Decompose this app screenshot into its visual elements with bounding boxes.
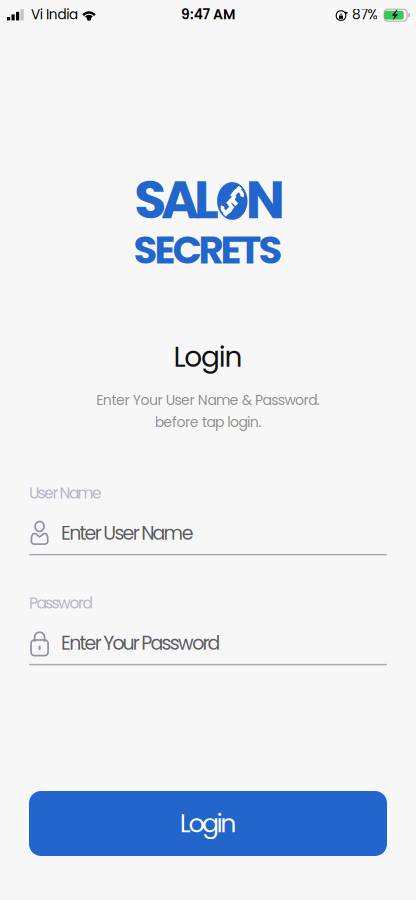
staticText: N xyxy=(246,164,285,236)
staticText: User Name xyxy=(29,482,102,504)
staticText: Enter User Name xyxy=(61,520,194,546)
staticText: 9:47 AM xyxy=(181,5,235,24)
staticText: Login xyxy=(180,806,236,841)
staticText: 87% xyxy=(352,5,377,24)
staticText: Vi India xyxy=(31,5,78,24)
button[interactable]: Login xyxy=(29,791,387,856)
button[interactable]: Password xyxy=(29,590,387,666)
staticText: Enter Your Password xyxy=(61,630,221,656)
staticText: before tap login. xyxy=(155,412,261,432)
button[interactable]: User Name xyxy=(29,480,387,556)
staticText: Login xyxy=(173,337,243,377)
staticText: Password xyxy=(29,592,92,614)
staticText: SECRETS xyxy=(133,223,282,277)
staticText: Enter Your User Name & Password. xyxy=(96,390,320,410)
staticText: SAL xyxy=(134,164,219,236)
